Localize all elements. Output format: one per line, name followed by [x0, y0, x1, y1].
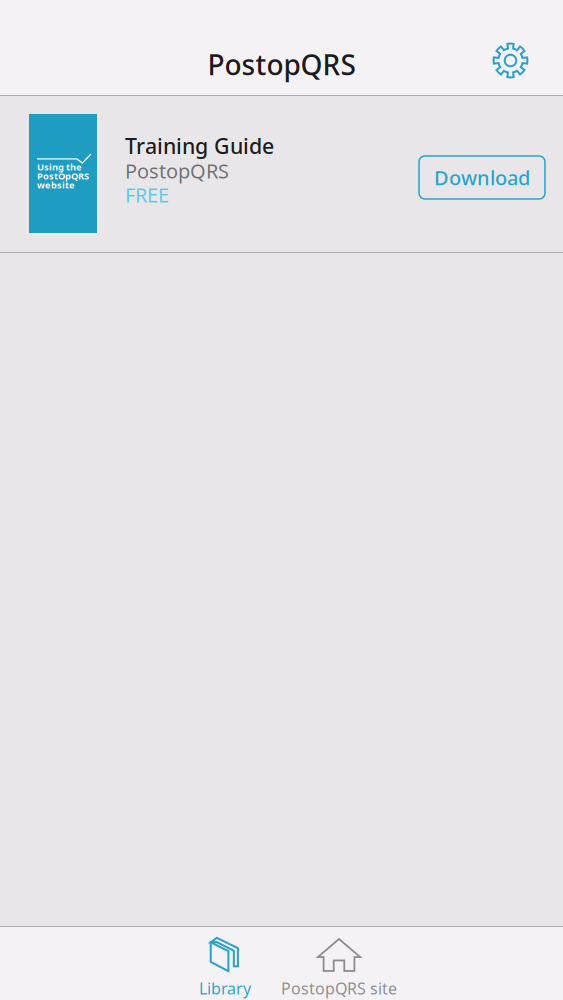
button[interactable]: Download [419, 156, 545, 199]
staticText: PostopQRS [125, 157, 229, 184]
button[interactable]: Library [170, 927, 280, 1000]
staticText: Download [434, 164, 530, 191]
button[interactable]: Settings [484, 34, 537, 87]
staticText: website [37, 179, 75, 191]
staticText: Training Guide [125, 132, 274, 160]
staticText: PostopQRS site [281, 978, 397, 999]
button[interactable]: Using the [0, 96, 563, 252]
staticText: Library [199, 978, 251, 999]
staticText: FREE [125, 181, 169, 208]
staticText: PostOpQRS [37, 170, 89, 182]
staticText: PostopQRS [207, 46, 355, 83]
staticText: Using the [37, 161, 82, 173]
button[interactable]: PostopQRS site [280, 927, 398, 1000]
